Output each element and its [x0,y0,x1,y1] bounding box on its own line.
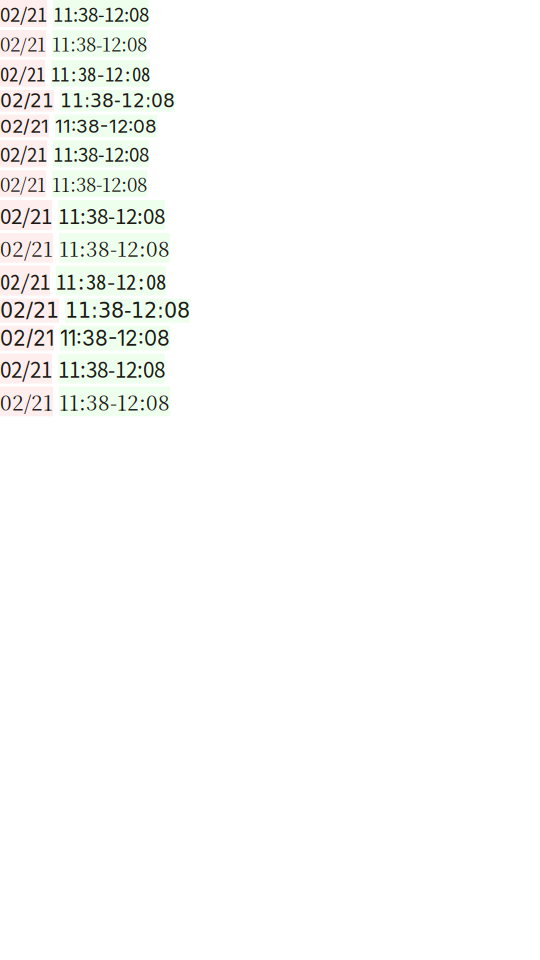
staticText: 02/21 [0,170,46,197]
staticText: 02/21 [0,266,50,296]
staticText: 11:38-12:08 [51,60,150,87]
staticText: 11:38-12:08 [56,266,166,296]
staticText: 11:38-12:08 [53,140,149,167]
staticText: 11:38-12:08 [55,115,157,137]
staticText: 02/21 [0,200,52,230]
staticText: 11:38-12:08 [59,387,170,416]
staticText: 02/21 [0,115,49,137]
staticText: 11:38-12:08 [52,30,147,57]
staticText: 02/21 [0,387,53,416]
staticText: 02/21 [0,354,52,384]
staticText: 11:38-12:08 [60,90,175,112]
staticText: 11:38-12:08 [65,299,190,323]
staticText: 11:38-12:08 [53,0,149,27]
staticText: 11:38-12:08 [60,326,170,351]
staticText: 02/21 [0,90,54,112]
staticText: 11:38-12:08 [59,233,170,263]
staticText: 02/21 [0,0,47,27]
staticText: 11:38-12:08 [58,354,165,384]
staticText: 11:38-12:08 [58,200,165,230]
staticText: 02/21 [0,140,47,167]
staticText: 11:38-12:08 [52,170,147,197]
staticText: 02/21 [0,299,59,323]
staticText: 02/21 [0,233,53,263]
staticText: 02/21 [0,30,46,57]
staticText: 02/21 [0,326,54,351]
staticText: 02/21 [0,60,45,87]
